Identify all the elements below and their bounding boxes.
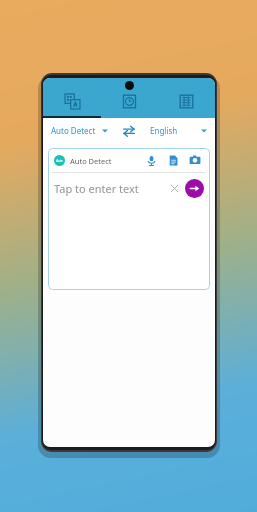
button[interactable]: Clear text [166, 180, 182, 196]
button[interactable]: Voice input [142, 151, 160, 169]
button[interactable]: Saved phrases [158, 78, 215, 118]
button[interactable]: English [142, 118, 215, 143]
button[interactable]: Camera translate [186, 151, 204, 169]
button[interactable]: History [101, 78, 158, 118]
staticText: Auto Detect [51, 125, 96, 136]
button[interactable]: Translate [185, 179, 204, 198]
staticText: Auto Detect [70, 156, 112, 166]
staticText: Tap to enter text [54, 181, 139, 196]
button[interactable]: Translate [43, 78, 101, 118]
staticText: English [150, 125, 178, 136]
button[interactable]: Auto [54, 155, 112, 166]
button[interactable]: Document translate [164, 151, 182, 169]
button[interactable]: Auto Detect [43, 118, 116, 143]
staticText: Auto [56, 159, 63, 163]
button[interactable]: Swap languages [116, 120, 142, 142]
button[interactable]: Tap to enter text [54, 173, 166, 203]
